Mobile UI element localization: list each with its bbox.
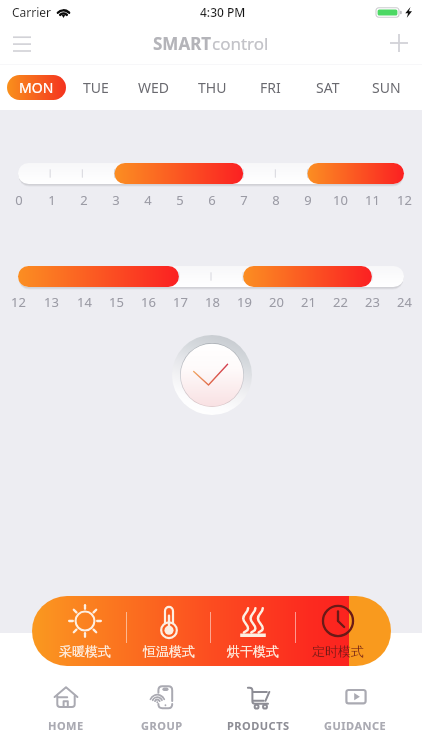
staticText: 定时模式 <box>312 643 364 659</box>
staticText: 20 <box>269 293 284 311</box>
staticText: GUIDANCE <box>324 718 387 733</box>
staticText: control <box>212 32 269 55</box>
staticText: Carrier <box>12 4 52 20</box>
staticText: THU <box>198 78 227 97</box>
button[interactable]: THU <box>183 75 241 100</box>
staticText: 13 <box>44 293 59 311</box>
staticText: 烘干模式 <box>227 643 279 659</box>
staticText: 采暖模式 <box>59 643 111 659</box>
button[interactable]: 烘干模式 <box>211 596 295 666</box>
staticText: 21 <box>301 293 316 311</box>
staticText: 12 <box>11 293 26 311</box>
staticText: 4:30 PM <box>200 4 246 20</box>
staticText: SUN <box>372 78 401 97</box>
staticText: 8 <box>272 191 280 209</box>
button[interactable]: SAT <box>299 75 357 100</box>
staticText: 9 <box>304 191 312 209</box>
button[interactable]: TUE <box>66 75 125 100</box>
staticText: TUE <box>83 78 109 97</box>
button[interactable]: 定时模式 <box>296 596 380 666</box>
staticText: 16 <box>141 293 156 311</box>
staticText: FRI <box>260 78 281 97</box>
staticText: 1 <box>48 191 56 209</box>
button[interactable]: Menu <box>5 26 39 60</box>
staticText: 6 <box>208 191 216 209</box>
staticText: 4 <box>144 191 152 209</box>
staticText: 2 <box>80 191 88 209</box>
staticText: WED <box>138 78 170 97</box>
button[interactable]: 恒温模式 <box>127 596 210 666</box>
staticText: 23 <box>365 293 380 311</box>
staticText: 18 <box>205 293 220 311</box>
staticText: 12 <box>397 191 412 209</box>
staticText: 7 <box>240 191 248 209</box>
staticText: HOME <box>48 718 84 733</box>
button[interactable]: MON <box>7 75 66 100</box>
staticText: SAT <box>316 78 340 97</box>
staticText: PRODUCTS <box>227 718 290 733</box>
staticText: 3 <box>112 191 120 209</box>
button[interactable]: GUIDANCE <box>307 679 404 734</box>
button[interactable]: FRI <box>241 75 299 100</box>
button[interactable]: 采暖模式 <box>43 596 126 666</box>
staticText: 11 <box>365 191 380 209</box>
staticText: 22 <box>333 293 348 311</box>
staticText: GROUP <box>141 718 183 733</box>
button[interactable]: Add <box>382 26 416 60</box>
staticText: 10 <box>333 191 348 209</box>
staticText: 恒温模式 <box>143 643 195 659</box>
button[interactable]: Confirm <box>172 335 252 415</box>
staticText: 19 <box>237 293 252 311</box>
staticText: 0 <box>15 191 23 209</box>
staticText: 24 <box>397 293 412 311</box>
button[interactable]: PRODUCTS <box>210 679 307 734</box>
staticText: 17 <box>173 293 188 311</box>
staticText: SMART <box>153 32 212 55</box>
button[interactable]: WED <box>125 75 183 100</box>
staticText: 15 <box>109 293 124 311</box>
staticText: 14 <box>77 293 92 311</box>
button[interactable]: SUN <box>357 75 415 100</box>
staticText: MON <box>19 78 54 97</box>
staticText: 5 <box>176 191 184 209</box>
button[interactable]: GROUP <box>114 679 210 734</box>
button[interactable]: HOME <box>18 679 114 734</box>
